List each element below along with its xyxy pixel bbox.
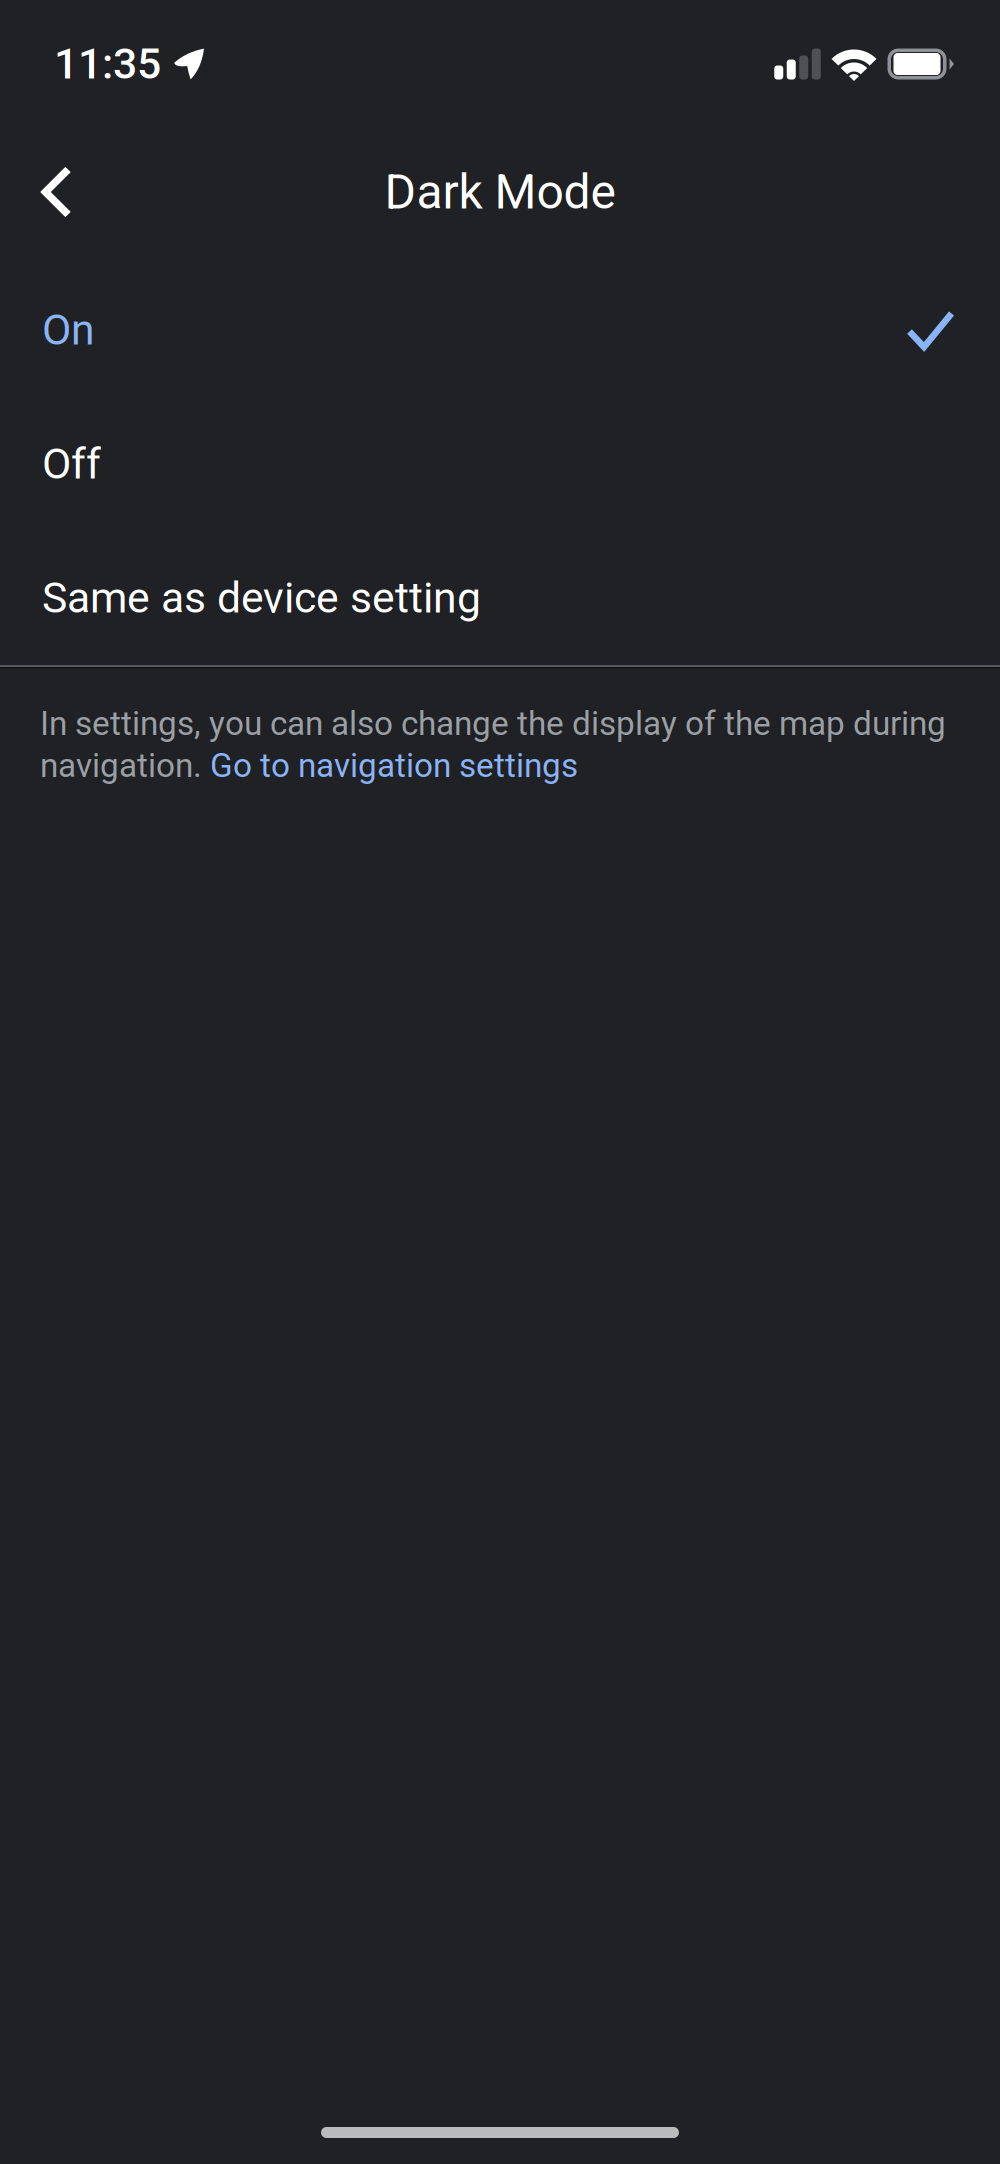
staticText: 11:35 (54, 39, 161, 89)
button[interactable]: Go to navigation settings (210, 746, 578, 785)
staticText: navigation. (40, 746, 210, 785)
staticText: Go to navigation settings (210, 746, 578, 785)
staticText: In settings, you can also change the dis… (40, 704, 946, 743)
button[interactable]: Back (0, 128, 112, 256)
staticText: On (42, 305, 95, 355)
button[interactable]: Off (0, 397, 1000, 531)
staticText: Off (42, 439, 101, 489)
button[interactable]: On (0, 263, 1000, 397)
staticText: Dark Mode (384, 164, 615, 220)
staticText: Same as device setting (42, 573, 481, 623)
button[interactable]: Same as device setting (0, 531, 1000, 665)
